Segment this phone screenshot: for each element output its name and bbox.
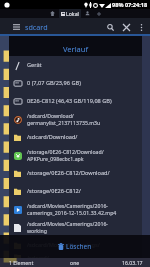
staticText: /sdcard/Movies/Camerings/ <box>27 241 100 249</box>
button[interactable]: Account <box>84 10 91 17</box>
button[interactable]: Close <box>119 20 133 34</box>
staticText: /storage/0E26-C812/ <box>27 187 81 195</box>
button[interactable]: Search <box>103 20 117 34</box>
staticText: /sdcard/Movies/Camerings/2016-Dezember-1… <box>27 202 142 209</box>
staticText: /storage/0E26-C812/Download/ <box>27 148 104 155</box>
staticText: Gerät <box>27 61 42 69</box>
staticText: Lokal <box>66 10 79 17</box>
staticText: APKPure_098ecbc1.apk <box>27 155 84 162</box>
staticText: /sdcard/Movies/Camerings/2016-Dezember-1… <box>27 220 142 227</box>
staticText: 1 Element <box>9 259 34 266</box>
staticText: /sdcard/Download/ <box>27 133 78 141</box>
staticText: sdcard <box>25 22 48 32</box>
button[interactable]: Lokal <box>59 9 81 18</box>
staticText: 16.03.17 <box>122 259 143 266</box>
staticText: 0E26-C812 (46,43 GB/119,08 GB) <box>27 97 112 105</box>
button[interactable]: Löschen <box>55 240 95 253</box>
button[interactable]: /storage/0E26-C812/Download/ <box>9 164 142 182</box>
button[interactable]: /sdcard/Download/ <box>9 110 142 128</box>
staticText: 0 (7,07 GB/23,96 GB) <box>27 79 81 87</box>
button[interactable]: /storage/0E26-C812/ <box>9 182 142 200</box>
button[interactable]: 0E26-C812 (46,43 GB/119,08 GB) <box>9 92 142 110</box>
button[interactable]: /sdcard/Movies/Camerings/2016-Dezember-1… <box>9 200 142 218</box>
button[interactable]: Gerät <box>9 56 142 74</box>
staticText: germanylist_2137113735.m3u <box>27 119 101 126</box>
button[interactable]: /storage/0E26-C812/Download/ <box>9 146 142 164</box>
button[interactable]: /sdcard/Movies/Camerings/ <box>9 236 142 254</box>
button[interactable]: /sdcard/Movies/Camerings/2016-Dezember-1… <box>9 218 142 236</box>
button[interactable]: /sdcard/Download/ <box>9 128 142 146</box>
button[interactable]: More options <box>134 20 148 34</box>
button[interactable]: 0 (7,07 GB/23,96 GB) <box>9 74 142 92</box>
button[interactable]: Menu <box>12 23 20 31</box>
staticText: Löschen <box>66 242 92 251</box>
button[interactable]: Home <box>49 10 56 17</box>
staticText: /sdcard/Download/ <box>27 112 74 119</box>
staticText: camerings_2016-12-15.01.33.42.mp4 <box>27 209 117 216</box>
staticText: one <box>70 259 80 266</box>
button[interactable]: New tab <box>95 10 102 17</box>
staticText: Verlauf <box>63 44 89 54</box>
staticText: /storage/0E26-C812/Download/ <box>27 169 110 177</box>
staticText: 98% 07:24:18 <box>112 1 148 9</box>
staticText: working <box>27 227 47 234</box>
